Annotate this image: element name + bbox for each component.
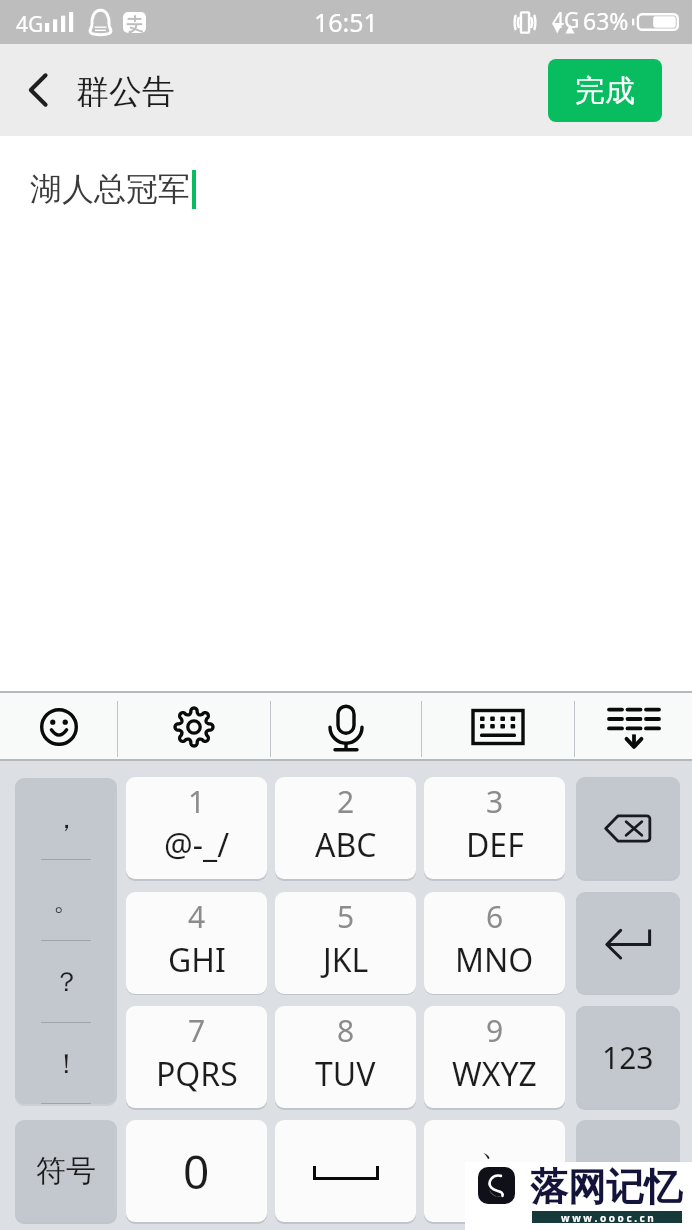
staticText: 16:51 — [314, 5, 378, 39]
staticText: @-_/ — [164, 823, 230, 867]
button[interactable]: 9 — [424, 1006, 565, 1108]
button[interactable]: 2 — [275, 777, 416, 879]
staticText: 4 — [188, 896, 206, 937]
staticText: 123 — [602, 1037, 654, 1078]
staticText: 8 — [337, 1010, 355, 1051]
staticText: 63% — [583, 5, 629, 36]
button[interactable]: 5 — [275, 892, 416, 994]
staticText: 3 — [486, 781, 504, 822]
staticText: 5 — [337, 896, 355, 937]
staticText: 4G — [552, 6, 580, 35]
button[interactable]: 6 — [424, 892, 565, 994]
staticText: 湖人总冠军 — [30, 169, 190, 209]
button[interactable]: 123 — [576, 1006, 680, 1108]
button[interactable]: Back — [0, 44, 76, 136]
staticText: TUV — [315, 1052, 376, 1096]
staticText: 。 — [53, 884, 80, 918]
staticText: JKL — [323, 938, 369, 982]
button[interactable]: Send — [576, 1120, 680, 1222]
button[interactable]: 0 — [126, 1120, 267, 1222]
button[interactable]: Settings — [118, 691, 270, 761]
staticText: ？ — [53, 965, 80, 999]
button[interactable]: ， — [15, 778, 117, 1104]
button[interactable]: Backspace — [576, 777, 680, 879]
staticText: PQRS — [156, 1052, 238, 1096]
staticText: 符号 — [36, 1152, 96, 1190]
button[interactable]: Keyboard layout — [422, 691, 574, 761]
staticText: ABC — [315, 823, 377, 867]
button[interactable]: 符号 — [15, 1120, 117, 1222]
button[interactable]: Enter — [576, 892, 680, 994]
button[interactable]: Voice input — [271, 691, 421, 761]
staticText: WXYZ — [452, 1052, 537, 1096]
staticText: 、 — [481, 1128, 509, 1163]
staticText: 6 — [486, 896, 504, 937]
staticText: 7 — [188, 1010, 206, 1051]
staticText: 落网记忆 — [530, 1163, 682, 1211]
button[interactable]: Emoji — [0, 691, 117, 761]
button[interactable]: 3 — [424, 777, 565, 879]
staticText: w w w . o o o c . c n — [561, 1211, 654, 1223]
staticText: GHI — [168, 938, 226, 982]
button[interactable]: 7 — [126, 1006, 267, 1108]
staticText: DEF — [466, 823, 524, 867]
button[interactable]: Hide keyboard — [575, 691, 692, 761]
staticText: MNO — [455, 938, 534, 982]
button[interactable]: 完成 — [548, 59, 662, 122]
staticText: 9 — [486, 1010, 504, 1051]
staticText: 0 — [183, 1140, 210, 1203]
button[interactable]: 4 — [126, 892, 267, 994]
staticText: 群公告 — [76, 71, 175, 113]
staticText: 2 — [337, 781, 355, 822]
staticText: 4G — [16, 10, 44, 39]
button[interactable]: 8 — [275, 1006, 416, 1108]
staticText: ， — [53, 802, 80, 836]
staticText: ！ — [53, 1047, 80, 1081]
button[interactable]: 、 — [424, 1120, 565, 1222]
staticText: 完成 — [575, 72, 635, 110]
button[interactable]: Space — [275, 1120, 416, 1222]
staticText: 1 — [188, 781, 206, 822]
button[interactable]: 1 — [126, 777, 267, 879]
